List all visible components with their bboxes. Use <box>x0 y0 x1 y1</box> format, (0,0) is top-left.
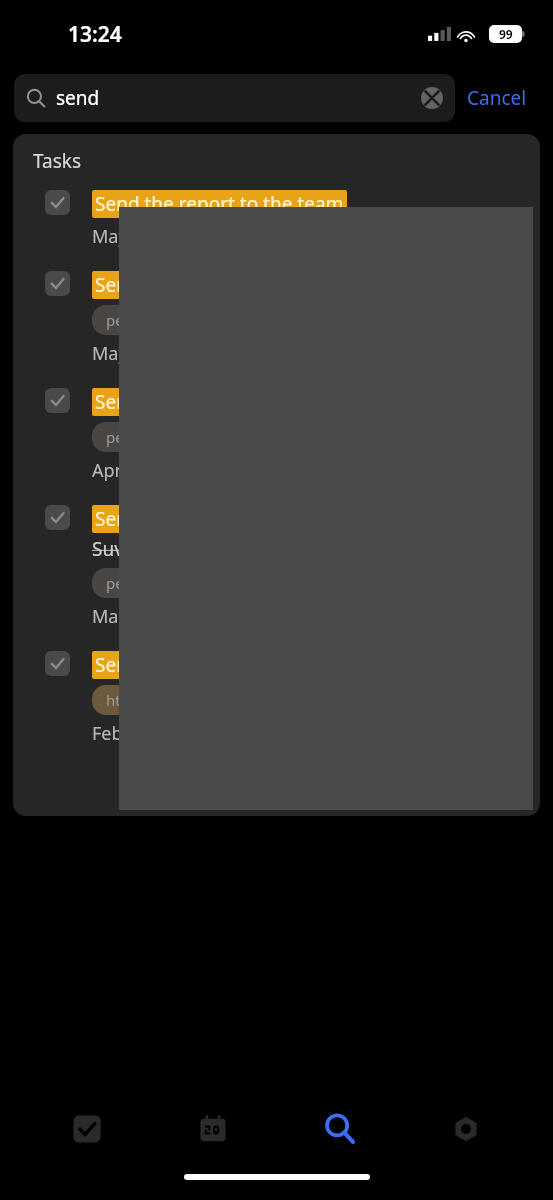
staticText: send <box>56 85 421 111</box>
staticText: 99 <box>499 26 513 42</box>
staticText: Suvrendu review notes <box>92 536 295 562</box>
staticText: Send update email <box>95 272 262 298</box>
button[interactable]: Send the report to the team <box>13 184 540 257</box>
staticText: Send the report to the team <box>95 191 344 217</box>
staticText: htg <box>106 690 130 710</box>
staticText: Cancel <box>467 85 527 111</box>
staticText: Send files <box>95 506 181 532</box>
staticText: Mar 1, 2024 <box>92 604 192 629</box>
staticText: Send invoice copy <box>95 389 254 415</box>
staticText: May 30, 2024 <box>92 224 204 249</box>
button[interactable]: Send files <box>13 491 540 637</box>
button[interactable]: Tasks <box>48 1090 126 1168</box>
staticText: Feb 12, 2024 <box>92 721 199 746</box>
button[interactable]: Clear search <box>421 87 443 109</box>
button[interactable]: Settings <box>427 1090 505 1168</box>
button[interactable]: Send invoice copy <box>13 374 540 491</box>
staticText: Send it over <box>95 652 201 678</box>
button[interactable]: Calendar <box>174 1090 252 1168</box>
staticText: May 17, 2024 <box>92 341 204 366</box>
staticText: personal <box>106 310 168 330</box>
staticText: 13:24 <box>68 20 122 49</box>
button[interactable]: Send it over <box>13 637 540 754</box>
staticText: personal <box>106 573 168 593</box>
staticText: Apr 15, 2024 <box>92 458 198 483</box>
button[interactable]: Search <box>301 1090 379 1168</box>
button[interactable]: View More <box>13 764 540 816</box>
button[interactable]: send <box>14 74 455 122</box>
button[interactable]: Send update email <box>13 257 540 374</box>
staticText: Tasks <box>33 148 82 174</box>
staticText: personal <box>106 427 168 447</box>
button[interactable]: Cancel <box>455 79 539 117</box>
